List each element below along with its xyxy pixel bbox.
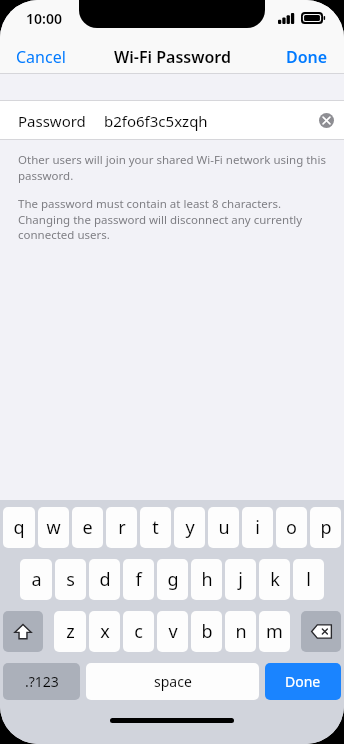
button[interactable]: u	[208, 507, 239, 548]
button[interactable]: q	[3, 507, 35, 548]
staticText: b	[201, 619, 213, 644]
staticText: Wi-Fi Password	[114, 46, 231, 68]
staticText: Cancel	[16, 46, 66, 68]
staticText: e	[82, 515, 93, 540]
button[interactable]: h	[191, 559, 222, 600]
button[interactable]: Password	[0, 100, 344, 140]
button[interactable]: o	[276, 507, 307, 548]
button[interactable]: Done	[274, 40, 344, 74]
button[interactable]: f	[123, 559, 154, 600]
staticText: p	[320, 515, 332, 540]
staticText: 10:00	[26, 9, 62, 28]
button[interactable]: n	[225, 611, 256, 652]
button[interactable]: p	[310, 507, 341, 548]
staticText: o	[286, 515, 297, 540]
staticText: u	[218, 515, 230, 540]
button[interactable]: d	[89, 559, 120, 600]
button[interactable]: g	[157, 559, 188, 600]
staticText: q	[13, 515, 25, 540]
button[interactable]: z	[54, 611, 86, 652]
button[interactable]: y	[174, 507, 205, 548]
staticText: Done	[285, 672, 321, 691]
button[interactable]: s	[55, 559, 86, 600]
button[interactable]: l	[293, 559, 324, 600]
staticText: c	[134, 619, 143, 644]
staticText: x	[100, 619, 110, 644]
staticText: Done	[286, 46, 328, 68]
staticText: s	[66, 567, 75, 592]
button[interactable]: space	[86, 663, 259, 700]
button[interactable]: Cancel	[0, 40, 78, 74]
staticText: d	[99, 567, 111, 592]
staticText: v	[168, 619, 178, 644]
button[interactable]: e	[72, 507, 103, 548]
button[interactable]: Clear text	[309, 105, 344, 136]
staticText: g	[167, 567, 179, 592]
staticText: j	[238, 567, 243, 592]
staticText: b2fo6f3c5xzqh	[104, 111, 208, 131]
button[interactable]: r	[106, 507, 137, 548]
staticText: i	[255, 515, 260, 540]
staticText: w	[46, 515, 61, 540]
button[interactable]: x	[89, 611, 120, 652]
staticText: The password must contain at least 8 cha…	[18, 196, 326, 242]
staticText: m	[266, 619, 283, 644]
staticText: a	[31, 567, 42, 592]
button[interactable]: k	[259, 559, 290, 600]
button[interactable]: j	[225, 559, 256, 600]
staticText: Password	[18, 111, 86, 131]
button[interactable]: v	[157, 611, 188, 652]
button[interactable]: a	[20, 559, 52, 600]
staticText: t	[152, 515, 159, 540]
button[interactable]: t	[140, 507, 171, 548]
button[interactable]: Shift	[3, 611, 43, 652]
button[interactable]: Done	[265, 663, 341, 700]
staticText: l	[306, 567, 311, 592]
button[interactable]: b	[191, 611, 222, 652]
staticText: Other users will join your shared Wi-Fi …	[18, 152, 326, 183]
button[interactable]: m	[259, 611, 290, 652]
button[interactable]: .?123	[3, 663, 80, 700]
staticText: n	[235, 619, 247, 644]
staticText: f	[135, 567, 142, 592]
button[interactable]: w	[38, 507, 69, 548]
staticText: k	[270, 567, 280, 592]
button[interactable]: i	[242, 507, 273, 548]
staticText: .?123	[25, 672, 59, 691]
button[interactable]: c	[123, 611, 154, 652]
staticText: y	[185, 515, 195, 540]
staticText: z	[66, 619, 75, 644]
button[interactable]: Backspace	[301, 611, 341, 652]
staticText: r	[118, 515, 126, 540]
staticText: space	[154, 672, 192, 691]
staticText: h	[201, 567, 213, 592]
